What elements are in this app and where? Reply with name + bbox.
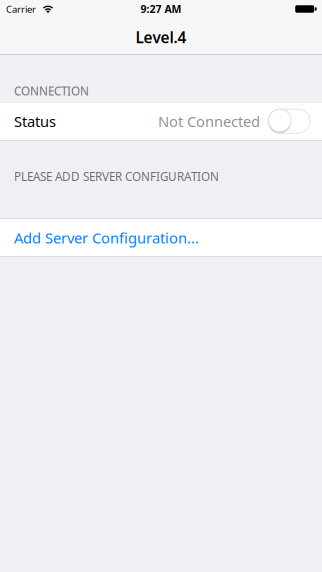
staticText: CONNECTION — [14, 83, 89, 99]
button[interactable]: Add Server Configuration... — [0, 219, 322, 256]
staticText: Status — [14, 111, 56, 131]
staticText: 9:27 AM — [140, 2, 181, 16]
staticText: Level.4 — [135, 27, 186, 48]
button[interactable]: Status, Not Connected — [268, 109, 310, 133]
staticText: Not Connected — [158, 111, 260, 131]
staticText: Add Server Configuration... — [14, 228, 199, 248]
staticText: Carrier — [6, 3, 36, 15]
staticText: PLEASE ADD SERVER CONFIGURATION — [14, 169, 219, 184]
